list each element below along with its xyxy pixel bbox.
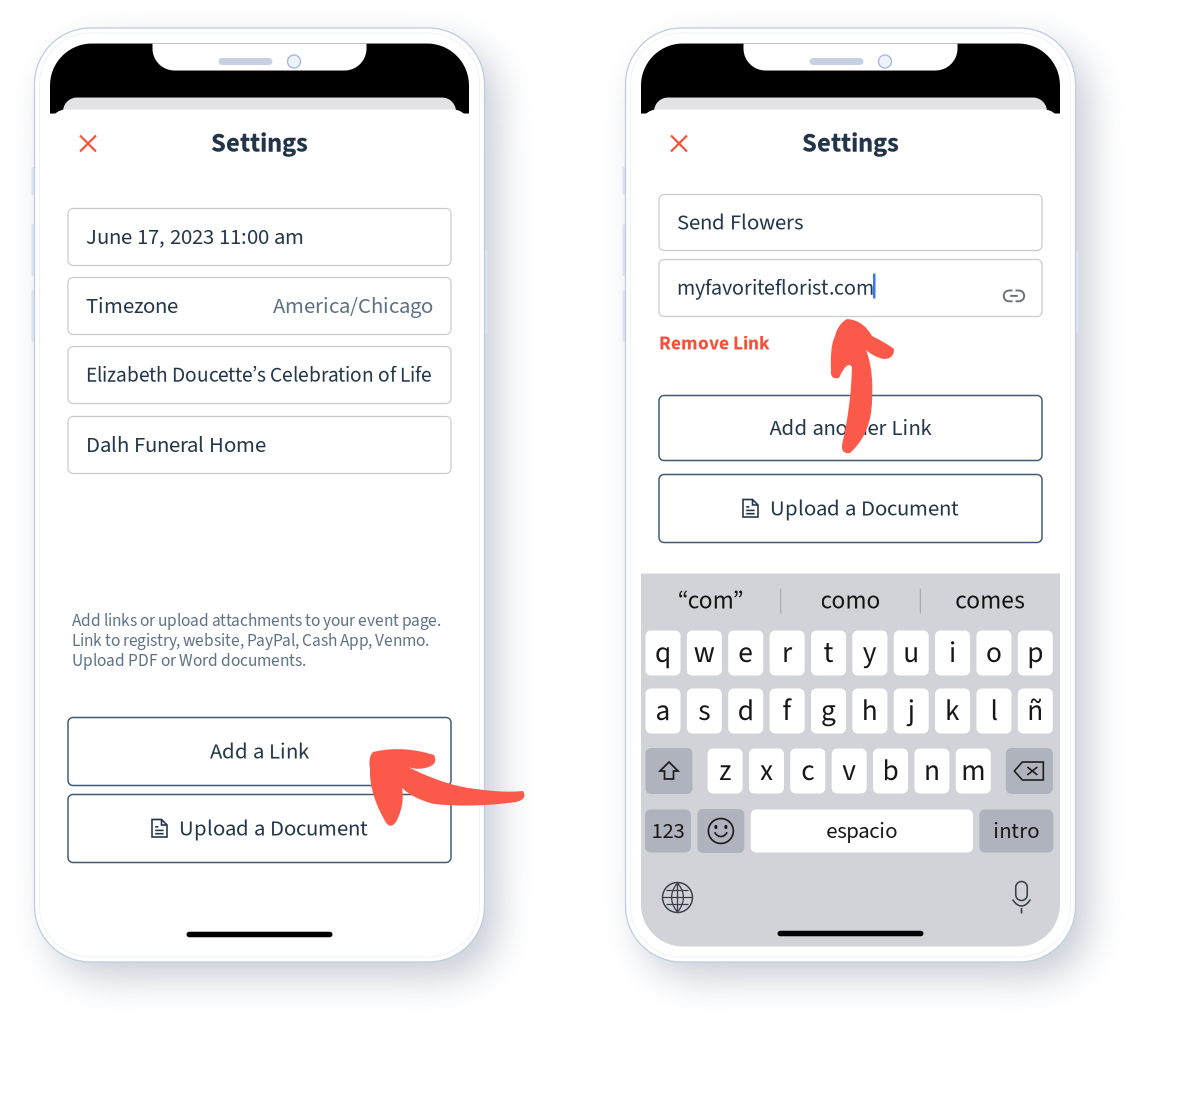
button[interactable]: z <box>708 748 743 793</box>
staticText: k <box>945 690 960 732</box>
button[interactable]: ñ <box>1018 688 1053 733</box>
button[interactable]: d <box>728 688 763 733</box>
staticText: o <box>986 632 1002 674</box>
button[interactable]: Dictate <box>1005 877 1037 917</box>
button[interactable]: e <box>728 630 763 675</box>
button[interactable]: Upload a Document <box>659 474 1042 542</box>
button[interactable]: u <box>894 630 929 675</box>
staticText: j <box>908 690 915 732</box>
button[interactable]: intro <box>979 809 1053 852</box>
button[interactable]: r <box>770 630 805 675</box>
button[interactable]: g <box>811 688 846 733</box>
staticText: ñ <box>1027 690 1043 732</box>
button[interactable]: Emoji <box>697 809 744 853</box>
staticText: Link to registry, website, PayPal, Cash … <box>72 628 429 653</box>
staticText: d <box>738 690 754 732</box>
button[interactable]: q <box>645 630 680 675</box>
button[interactable]: espacio <box>751 809 973 852</box>
button[interactable]: v <box>832 748 867 793</box>
staticText: f <box>783 690 792 732</box>
button[interactable]: t <box>811 630 846 675</box>
button[interactable]: Close <box>68 123 108 163</box>
staticText: Send Flowers <box>677 206 803 239</box>
staticText: s <box>698 690 710 732</box>
staticText: l <box>990 690 997 732</box>
staticText: v <box>842 750 856 792</box>
staticText: myfavoriteflorist.com <box>677 272 874 304</box>
staticText: Upload PDF or Word documents. <box>72 648 306 673</box>
staticText: z <box>719 750 731 792</box>
staticText: t <box>823 632 833 674</box>
staticText: Add another Link <box>769 412 931 444</box>
button[interactable]: “com” <box>641 573 781 627</box>
button[interactable]: n <box>914 748 949 793</box>
staticText: Settings <box>802 124 899 162</box>
button[interactable]: 123 <box>645 809 691 852</box>
staticText: America/Chicago <box>273 290 433 322</box>
staticText: r <box>782 632 792 674</box>
staticText: h <box>862 690 878 732</box>
button[interactable]: Close <box>659 123 699 163</box>
staticText: u <box>903 632 919 674</box>
staticText: Settings <box>211 124 308 162</box>
staticText: p <box>1027 632 1043 674</box>
button[interactable]: k <box>935 688 970 733</box>
staticText: Elizabeth Doucette’s Celebration of Life <box>86 360 432 390</box>
staticText: Timezone <box>86 290 178 322</box>
button[interactable]: y <box>852 630 887 675</box>
staticText: c <box>801 750 814 792</box>
button[interactable]: p <box>1018 630 1053 675</box>
staticText: Add links or upload attachments to your … <box>72 608 441 633</box>
button[interactable]: como <box>781 573 920 627</box>
button[interactable]: Delete <box>1006 748 1053 794</box>
staticText: m <box>961 750 985 792</box>
staticText: “com” <box>678 582 744 619</box>
staticText: Upload a Document <box>179 812 368 845</box>
button[interactable]: Add another Link <box>659 395 1042 460</box>
staticText: a <box>655 690 670 732</box>
button[interactable]: i <box>935 630 970 675</box>
button[interactable]: Add a Link <box>68 717 451 785</box>
staticText: 123 <box>651 815 684 847</box>
staticText: i <box>949 632 956 674</box>
button[interactable]: c <box>790 748 825 793</box>
button[interactable]: m <box>956 748 991 793</box>
button[interactable]: Switch keyboard <box>659 879 695 915</box>
staticText: Add a Link <box>210 735 309 768</box>
button[interactable]: s <box>687 688 722 733</box>
button[interactable]: h <box>852 688 887 733</box>
button[interactable]: x <box>749 748 784 793</box>
button[interactable]: o <box>976 630 1011 675</box>
staticText: espacio <box>826 815 897 847</box>
button[interactable]: a <box>645 688 680 733</box>
staticText: q <box>655 632 671 674</box>
staticText: w <box>694 632 715 674</box>
staticText: Dalh Funeral Home <box>86 429 266 461</box>
staticText: Upload a Document <box>770 492 959 525</box>
staticText: x <box>760 750 773 792</box>
button[interactable]: b <box>873 748 908 793</box>
button[interactable]: Upload a Document <box>68 794 451 862</box>
button[interactable]: comes <box>920 573 1060 627</box>
staticText: como <box>820 582 880 619</box>
staticText: e <box>738 632 753 674</box>
staticText: intro <box>993 815 1039 847</box>
staticText: n <box>924 750 940 792</box>
staticText: b <box>882 750 898 792</box>
staticText: g <box>821 690 836 732</box>
staticText: June 17, 2023 11:00 am <box>86 221 304 253</box>
button[interactable]: j <box>894 688 929 733</box>
button[interactable]: l <box>976 688 1011 733</box>
button[interactable]: f <box>770 688 805 733</box>
button[interactable]: w <box>687 630 722 675</box>
staticText: y <box>863 632 877 674</box>
button[interactable]: Shift <box>645 748 692 794</box>
staticText: Remove Link <box>659 330 770 357</box>
staticText: comes <box>955 582 1025 619</box>
